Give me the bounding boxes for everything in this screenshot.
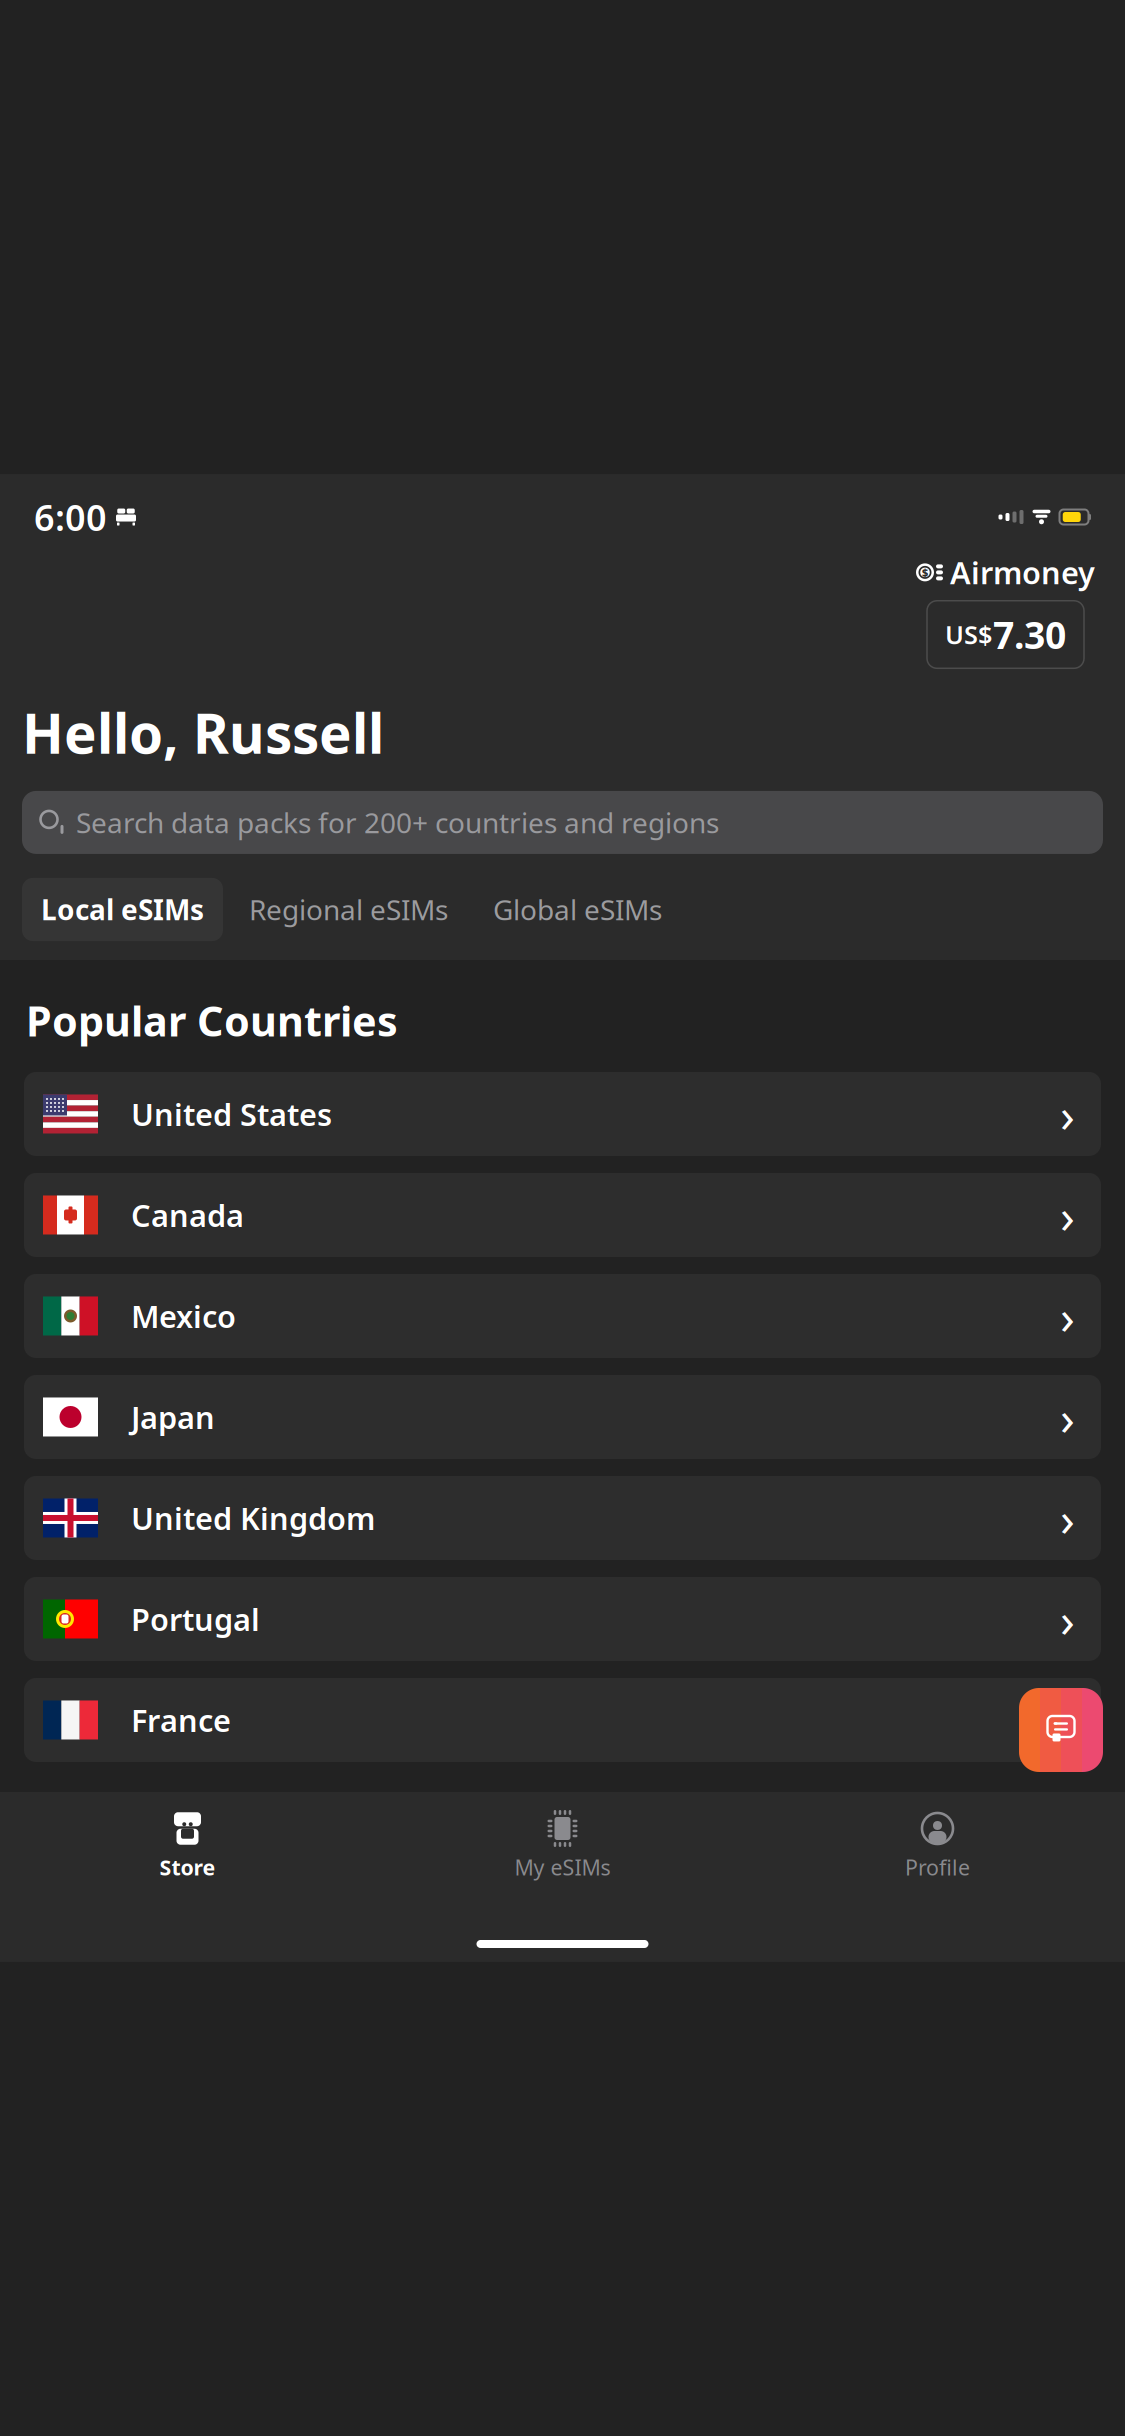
staticText: Mexico [131,1296,236,1336]
staticText: United Kingdom [131,1498,375,1538]
staticText: › [1060,1688,1075,1752]
staticText: Airmoney [950,552,1095,593]
button[interactable]: Profile [750,1806,1125,1887]
staticText: › [1060,1082,1075,1146]
button[interactable]: My eSIMs [375,1806,750,1887]
staticText: › [1060,1385,1075,1449]
staticText: US$ [945,618,992,651]
button[interactable]: United States [24,1072,1101,1156]
staticText: › [1060,1183,1075,1247]
button[interactable]: $ [916,552,1095,668]
staticText: › [1060,1587,1075,1651]
staticText: 6:00 [34,493,107,541]
staticText: Profile [905,1853,970,1881]
button[interactable]: United Kingdom [24,1476,1101,1560]
staticText: Hello, Russell [22,696,384,769]
button[interactable]: France [24,1678,1101,1762]
button[interactable]: Mexico [24,1274,1101,1358]
button[interactable]: Search data packs for 200+ countries and… [22,791,1103,854]
staticText: Search data packs for 200+ countries and… [76,804,719,841]
staticText: Store [159,1853,215,1881]
staticText: Local eSIMs [41,891,204,928]
staticText: France [131,1700,231,1740]
staticText: › [1060,1486,1075,1550]
staticText: My eSIMs [514,1853,610,1881]
staticText: Japan [131,1397,215,1437]
staticText: Canada [131,1195,244,1235]
staticText: 7.30 [993,610,1066,659]
staticText: › [1060,1284,1075,1348]
staticText: Portugal [131,1599,260,1639]
button[interactable]: Global eSIMs [474,878,681,941]
button[interactable]: Japan [24,1375,1101,1459]
button[interactable]: Store [0,1806,375,1887]
button[interactable]: Regional eSIMs [230,878,467,941]
button[interactable]: Chat support [1019,1688,1103,1772]
staticText: Regional eSIMs [249,891,448,928]
button[interactable]: Portugal [24,1577,1101,1661]
staticText: United States [131,1094,332,1134]
button[interactable]: Canada [24,1173,1101,1257]
staticText: Popular Countries [26,993,398,1048]
button[interactable]: Local eSIMs [22,878,223,941]
staticText: Global eSIMs [493,891,662,928]
staticText: $ [922,565,928,579]
